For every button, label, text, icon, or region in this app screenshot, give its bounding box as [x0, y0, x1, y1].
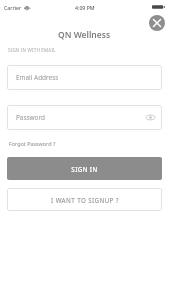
staticText: SIGN IN	[71, 165, 98, 173]
button[interactable]: Show password	[146, 113, 155, 122]
button[interactable]: Email Address	[7, 65, 162, 90]
staticText: Email Address	[16, 73, 59, 82]
staticText: Carrier	[4, 4, 22, 11]
button[interactable]: Password	[7, 105, 162, 130]
button[interactable]: Close	[149, 15, 165, 31]
staticText: SIGN IN WITH EMAIL	[8, 47, 56, 53]
staticText: 4:09 PM	[75, 4, 95, 11]
staticText: I WANT TO SIGNUP ?	[51, 196, 119, 204]
staticText: Password	[16, 113, 45, 122]
button[interactable]: I WANT TO SIGNUP ?	[7, 188, 162, 211]
staticText: Forgot Password ?	[9, 140, 56, 147]
staticText: QN Wellness	[58, 29, 111, 41]
button[interactable]: SIGN IN	[7, 157, 162, 180]
button[interactable]: Forgot Password ?	[8, 139, 57, 148]
